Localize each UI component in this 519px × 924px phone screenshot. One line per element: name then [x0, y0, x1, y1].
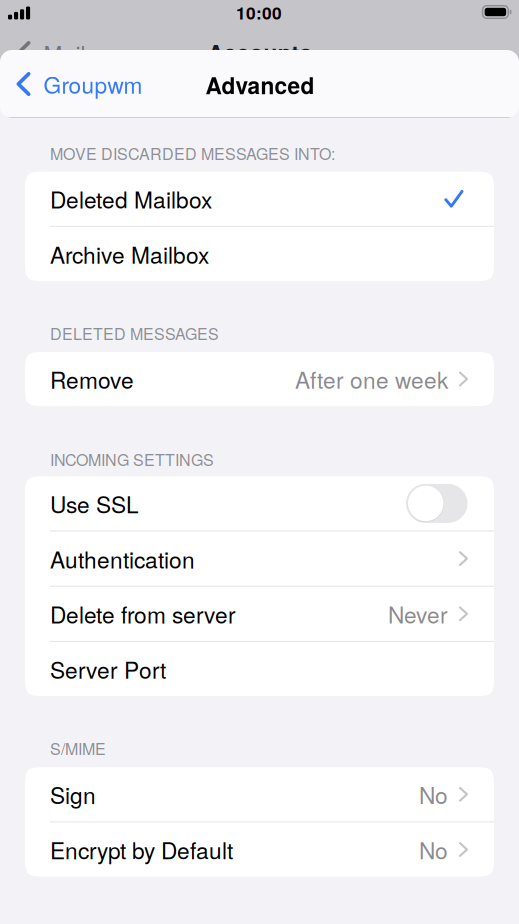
- button[interactable]: Encrypt by Default: [25, 822, 494, 877]
- staticText: Authentication: [50, 542, 195, 575]
- staticText: S/MIME: [50, 736, 106, 759]
- button[interactable]: Archive Mailbox: [25, 227, 494, 281]
- staticText: 10:00: [236, 0, 282, 25]
- staticText: Accounts: [207, 36, 312, 69]
- staticText: Encrypt by Default: [50, 833, 233, 866]
- staticText: Deleted Mailbox: [50, 183, 212, 215]
- button[interactable]: Sign: [25, 767, 494, 821]
- staticText: Mail: [43, 37, 85, 69]
- staticText: Groupwm: [43, 68, 142, 100]
- staticText: Never: [388, 598, 448, 630]
- button[interactable]: Server Port: [25, 642, 494, 696]
- staticText: Archive Mailbox: [50, 238, 209, 270]
- staticText: Remove: [50, 363, 134, 395]
- staticText: MOVE DISCARDED MESSAGES INTO:: [50, 141, 335, 164]
- button[interactable]: Deleted Mailbox: [25, 172, 494, 226]
- button[interactable]: Groupwm: [0, 57, 156, 111]
- button[interactable]: Remove: [25, 352, 494, 406]
- staticText: DELETED MESSAGES: [50, 321, 219, 344]
- button[interactable]: Use SSL: [25, 476, 494, 530]
- staticText: Sign: [50, 778, 96, 811]
- staticText: Advanced: [205, 69, 314, 101]
- staticText: INCOMING SETTINGS: [50, 447, 214, 470]
- staticText: Delete from server: [50, 598, 236, 630]
- staticText: No: [419, 833, 448, 866]
- staticText: No: [419, 778, 448, 811]
- staticText: Use SSL: [50, 487, 139, 520]
- button[interactable]: Delete from server: [25, 587, 494, 641]
- button[interactable]: Authentication: [25, 531, 494, 586]
- staticText: After one week: [295, 363, 448, 395]
- staticText: Server Port: [50, 653, 166, 685]
